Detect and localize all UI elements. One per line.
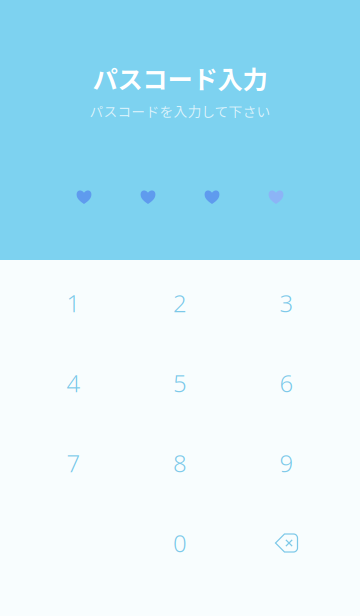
staticText: 6	[279, 367, 293, 399]
button[interactable]: 9	[233, 423, 340, 503]
button[interactable]: Delete	[233, 503, 340, 583]
staticText: 0	[173, 527, 187, 559]
staticText: 8	[173, 447, 187, 479]
button[interactable]: 4	[20, 343, 127, 423]
button[interactable]: 0	[127, 503, 233, 583]
staticText: 2	[173, 287, 187, 319]
staticText: 1	[66, 287, 80, 319]
staticText: 3	[279, 287, 293, 319]
button[interactable]: 5	[127, 343, 233, 423]
button[interactable]: 8	[127, 423, 233, 503]
button[interactable]: 2	[127, 263, 233, 343]
button[interactable]: 1	[20, 263, 127, 343]
button[interactable]: 6	[233, 343, 340, 423]
staticText: パスコード入力	[92, 60, 267, 96]
button[interactable]: 3	[233, 263, 340, 343]
staticText: 7	[66, 447, 80, 479]
staticText: 5	[173, 367, 187, 399]
staticText: 9	[279, 447, 293, 479]
button[interactable]: 7	[20, 423, 127, 503]
staticText: 4	[66, 367, 80, 399]
staticText: パスコードを入力して下さい	[89, 101, 270, 121]
